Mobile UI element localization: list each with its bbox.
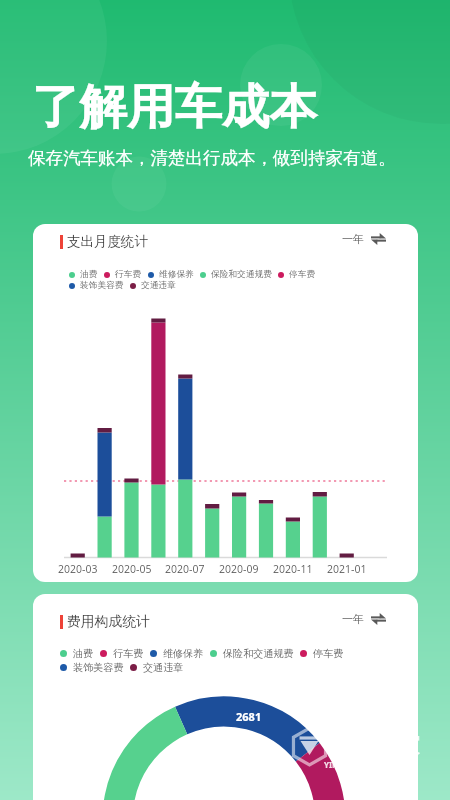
staticText: 保险和交通规费 [211,269,272,280]
staticText: 一年 [342,612,365,626]
staticText: 2020-07 [165,562,205,576]
staticText: 一年 [342,232,365,246]
staticText: 装饰美容费 [73,661,124,674]
staticText: 支出月度统计 [67,233,148,250]
staticText: 交通违章 [141,280,176,291]
staticText: 维修保养 [163,647,204,660]
staticText: 交通违章 [143,661,184,674]
staticText: 油费 [73,647,94,660]
staticText: 装饰美容费 [80,280,124,291]
staticText: 了解用车成本 [32,77,317,137]
staticText: 2681 [236,709,262,724]
staticText: 保存汽车账本，清楚出行成本，做到持家有道。 [28,147,396,169]
staticText: 硬件之家 [329,731,421,760]
staticText: 行车费 [115,269,142,280]
button[interactable]: 一年 [342,612,386,626]
button[interactable]: 费用构成统计 [60,613,150,630]
staticText: 2020-05 [112,562,152,576]
staticText: 停车费 [313,647,344,660]
staticText: YING JIAN ZHI JIA.COM [324,759,415,770]
staticText: 2021-01 [327,562,367,576]
staticText: 维修保养 [159,269,194,280]
other: Switch chart [371,233,386,245]
staticText: 费用构成统计 [67,613,150,630]
button[interactable]: 支出月度统计 [60,233,148,250]
other: Switch chart [371,613,386,625]
staticText: 2020-09 [219,562,259,576]
staticText: 2020-03 [58,562,98,576]
staticText: 2020-11 [273,562,313,576]
staticText: 油费 [80,269,98,280]
staticText: 行车费 [113,647,144,660]
staticText: 停车费 [289,269,316,280]
staticText: 保险和交通规费 [223,647,294,660]
button[interactable]: 一年 [342,232,386,246]
